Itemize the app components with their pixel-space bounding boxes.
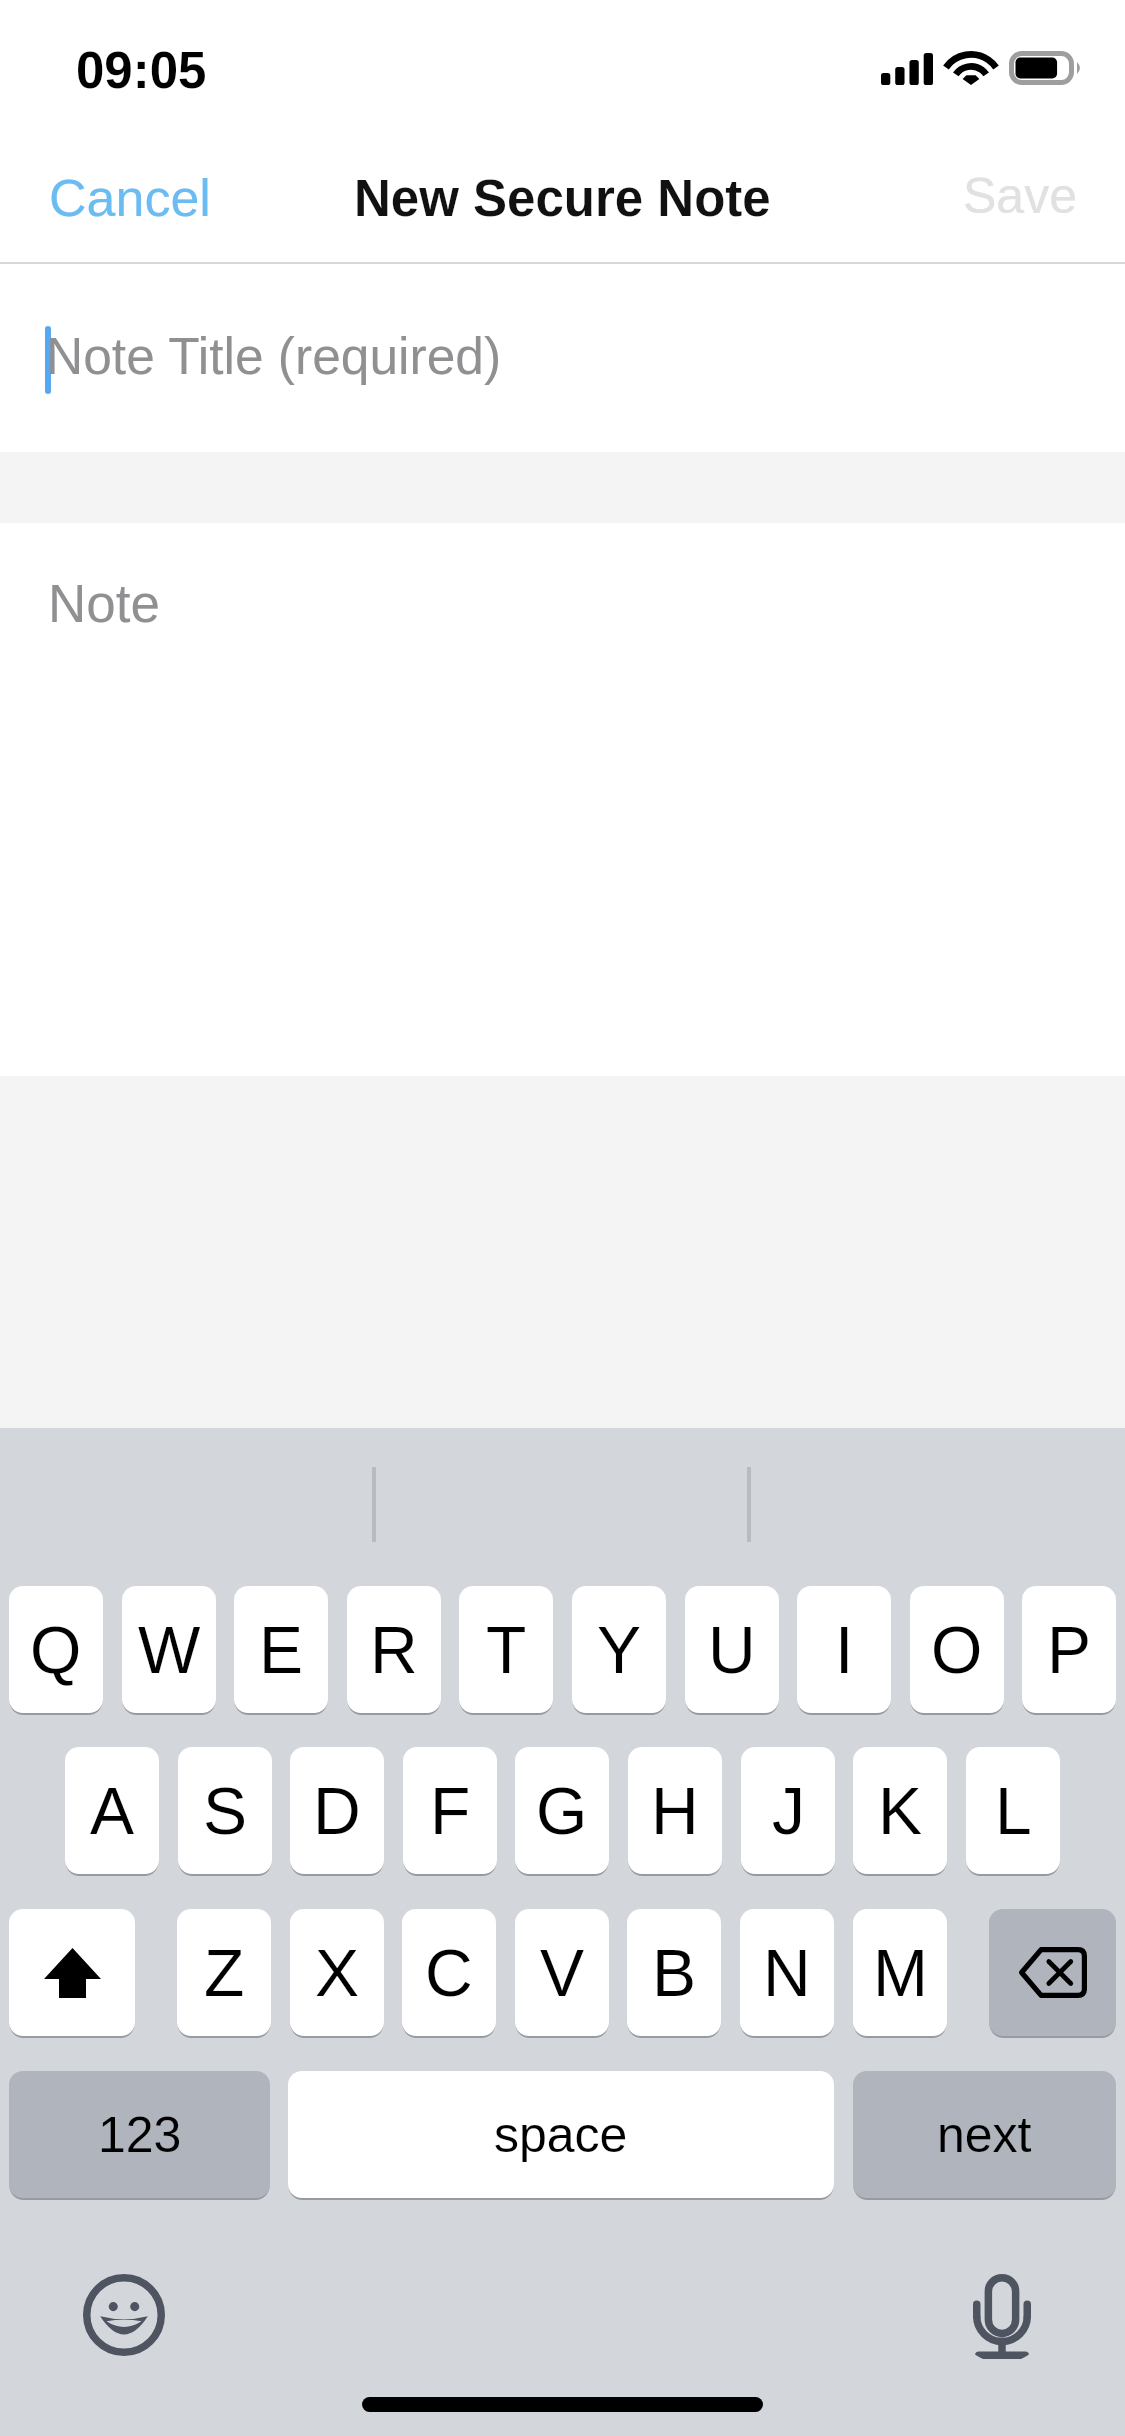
staticText: Note Title (required): [46, 327, 502, 385]
staticText: next: [937, 2107, 1032, 2163]
staticText: D: [313, 1774, 361, 1848]
button[interactable]: C: [402, 1909, 496, 2036]
button[interactable]: R: [347, 1586, 441, 1713]
button[interactable]: Shift: [9, 1909, 135, 2036]
button[interactable]: O: [910, 1586, 1004, 1713]
staticText: Save: [963, 168, 1077, 224]
staticText: B: [652, 1936, 697, 2010]
button[interactable]: E: [234, 1586, 328, 1713]
button[interactable]: G: [515, 1747, 609, 1874]
button[interactable]: A: [65, 1747, 159, 1874]
staticText: New Secure Note: [354, 170, 771, 227]
staticText: T: [486, 1613, 527, 1687]
button[interactable]: Q: [9, 1586, 103, 1713]
staticText: H: [651, 1774, 699, 1848]
button[interactable]: Emoji keyboard: [77, 2268, 171, 2362]
staticText: Y: [597, 1613, 642, 1687]
button[interactable]: K: [853, 1747, 947, 1874]
button[interactable]: Note Title (required): [0, 264, 1125, 452]
button[interactable]: N: [740, 1909, 834, 2036]
staticText: F: [430, 1774, 471, 1848]
button[interactable]: space: [288, 2071, 834, 2198]
button[interactable]: U: [685, 1586, 779, 1713]
staticText: S: [203, 1774, 248, 1848]
staticText: X: [315, 1936, 360, 2010]
staticText: K: [878, 1774, 923, 1848]
staticText: C: [425, 1936, 473, 2010]
staticText: G: [536, 1774, 588, 1848]
button[interactable]: Cancel: [14, 149, 246, 247]
staticText: U: [708, 1613, 756, 1687]
staticText: O: [931, 1613, 983, 1687]
button[interactable]: 123: [9, 2071, 270, 2198]
button[interactable]: H: [628, 1747, 722, 1874]
button[interactable]: Y: [572, 1586, 666, 1713]
button[interactable]: P: [1022, 1586, 1116, 1713]
staticText: A: [90, 1774, 135, 1848]
staticText: V: [540, 1936, 585, 2010]
button[interactable]: Voice input: [955, 2269, 1049, 2363]
staticText: 09:05: [76, 42, 207, 99]
button[interactable]: L: [966, 1747, 1060, 1874]
staticText: P: [1047, 1613, 1092, 1687]
button[interactable]: S: [178, 1747, 272, 1874]
staticText: space: [494, 2107, 628, 2163]
button[interactable]: next: [853, 2071, 1116, 2198]
button[interactable]: V: [515, 1909, 609, 2036]
staticText: E: [259, 1613, 304, 1687]
button[interactable]: D: [290, 1747, 384, 1874]
button[interactable]: M: [853, 1909, 947, 2036]
staticText: Cancel: [49, 169, 211, 227]
button[interactable]: I: [797, 1586, 891, 1713]
button[interactable]: W: [122, 1586, 216, 1713]
button[interactable]: Save: [928, 148, 1112, 244]
staticText: Note: [48, 574, 160, 633]
button[interactable]: Z: [177, 1909, 271, 2036]
staticText: Q: [30, 1613, 82, 1687]
button[interactable]: B: [627, 1909, 721, 2036]
staticText: 123: [98, 2107, 182, 2163]
staticText: L: [995, 1774, 1032, 1848]
button[interactable]: F: [403, 1747, 497, 1874]
staticText: M: [873, 1936, 928, 2010]
button[interactable]: J: [741, 1747, 835, 1874]
staticText: Z: [204, 1936, 245, 2010]
staticText: J: [772, 1774, 805, 1848]
staticText: R: [370, 1613, 418, 1687]
staticText: I: [835, 1613, 854, 1687]
staticText: W: [138, 1613, 201, 1687]
staticText: N: [763, 1936, 811, 2010]
button[interactable]: X: [290, 1909, 384, 2036]
button[interactable]: Backspace: [989, 1909, 1116, 2036]
button[interactable]: T: [459, 1586, 553, 1713]
